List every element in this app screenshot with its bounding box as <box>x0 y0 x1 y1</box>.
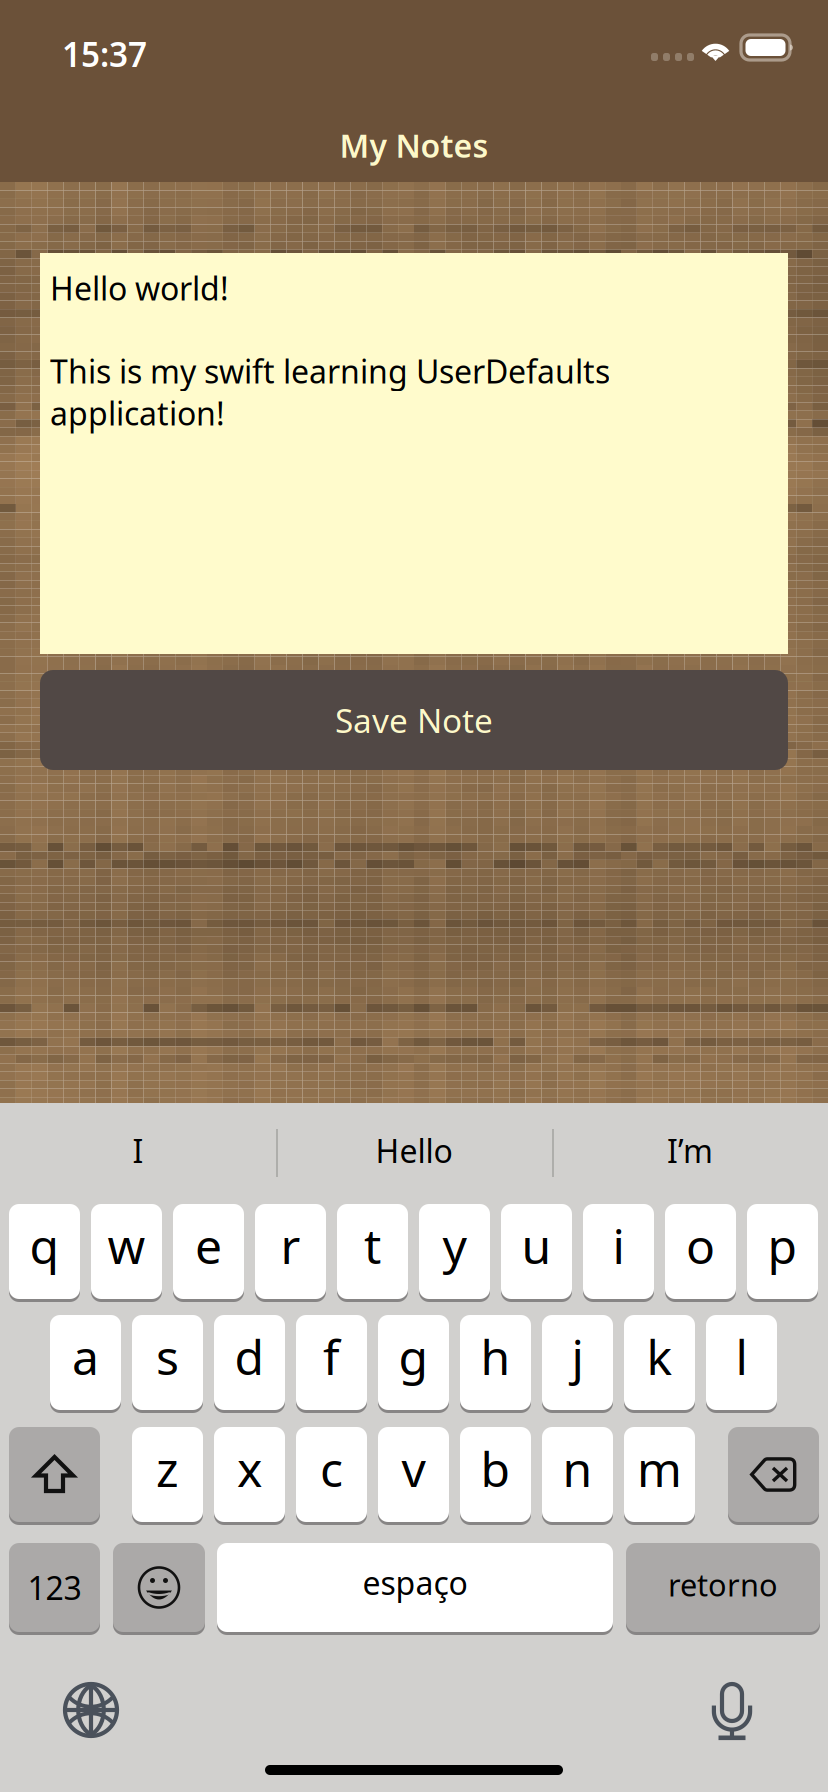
button[interactable]: k <box>624 1315 695 1413</box>
button[interactable]: s <box>132 1315 203 1413</box>
staticText: 15:37 <box>62 32 147 76</box>
staticText: I <box>132 1129 143 1172</box>
button[interactable]: d <box>214 1315 285 1413</box>
staticText: x <box>237 1437 262 1500</box>
staticText: Hello world! <box>50 267 229 309</box>
button[interactable]: Dictate <box>713 1682 751 1740</box>
staticText: This is my swift learning UserDefaults <box>50 350 610 392</box>
button[interactable]: u <box>501 1204 572 1302</box>
staticText: retorno <box>668 1564 778 1605</box>
staticText: b <box>480 1437 510 1500</box>
staticText: a <box>72 1325 99 1388</box>
staticText: p <box>767 1214 797 1277</box>
staticText: I’m <box>667 1129 713 1172</box>
staticText: h <box>480 1325 510 1388</box>
button[interactable]: h <box>460 1315 531 1413</box>
button[interactable]: Hello <box>276 1103 552 1204</box>
button[interactable]: w <box>91 1204 162 1302</box>
staticText: o <box>686 1214 715 1277</box>
button[interactable]: g <box>378 1315 449 1413</box>
button[interactable]: I <box>0 1103 276 1204</box>
staticText: s <box>156 1325 179 1388</box>
button[interactable]: v <box>378 1427 449 1525</box>
button[interactable]: I’m <box>552 1103 828 1204</box>
staticText: My Notes <box>339 124 488 166</box>
button[interactable]: espaço <box>217 1543 613 1635</box>
button[interactable]: Emoji <box>113 1543 205 1635</box>
staticText: j <box>571 1325 583 1388</box>
staticText: d <box>234 1325 264 1388</box>
staticText: w <box>107 1214 145 1277</box>
staticText: u <box>521 1214 551 1277</box>
button[interactable]: p <box>747 1204 818 1302</box>
staticText: v <box>401 1437 425 1500</box>
button[interactable]: Save Note <box>40 670 788 770</box>
staticText: 123 <box>27 1566 81 1609</box>
button[interactable]: retorno <box>626 1543 820 1635</box>
button[interactable]: a <box>50 1315 121 1413</box>
button[interactable]: o <box>665 1204 736 1302</box>
button[interactable]: y <box>419 1204 490 1302</box>
button[interactable]: j <box>542 1315 613 1413</box>
button[interactable]: Delete <box>728 1427 819 1525</box>
button[interactable]: Change keyboard <box>64 1683 118 1737</box>
button[interactable]: n <box>542 1427 613 1525</box>
staticText: n <box>562 1437 592 1500</box>
staticText: q <box>29 1214 59 1277</box>
button[interactable]: t <box>337 1204 408 1302</box>
staticText: m <box>637 1437 682 1500</box>
button[interactable]: c <box>296 1427 367 1525</box>
button[interactable]: e <box>173 1204 244 1302</box>
button[interactable]: q <box>9 1204 80 1302</box>
staticText: c <box>320 1437 343 1500</box>
staticText: g <box>398 1325 428 1388</box>
staticText: e <box>195 1214 222 1277</box>
button[interactable]: r <box>255 1204 326 1302</box>
staticText: y <box>442 1214 466 1277</box>
button[interactable]: 123 <box>9 1543 100 1635</box>
staticText: t <box>364 1214 381 1277</box>
staticText: l <box>735 1325 747 1388</box>
button[interactable]: b <box>460 1427 531 1525</box>
staticText: Save Note <box>335 698 493 742</box>
staticText: i <box>612 1214 624 1277</box>
button[interactable]: x <box>214 1427 285 1525</box>
staticText: f <box>323 1325 340 1388</box>
staticText: r <box>280 1214 300 1277</box>
button[interactable]: f <box>296 1315 367 1413</box>
staticText: espaço <box>362 1561 467 1604</box>
staticText: application! <box>50 392 225 434</box>
button[interactable]: l <box>706 1315 777 1413</box>
staticText: z <box>156 1437 179 1500</box>
button[interactable]: i <box>583 1204 654 1302</box>
button[interactable]: Shift <box>9 1427 100 1525</box>
button[interactable]: z <box>132 1427 203 1525</box>
staticText: Hello <box>375 1129 452 1172</box>
button[interactable]: m <box>624 1427 695 1525</box>
staticText: k <box>646 1325 672 1388</box>
